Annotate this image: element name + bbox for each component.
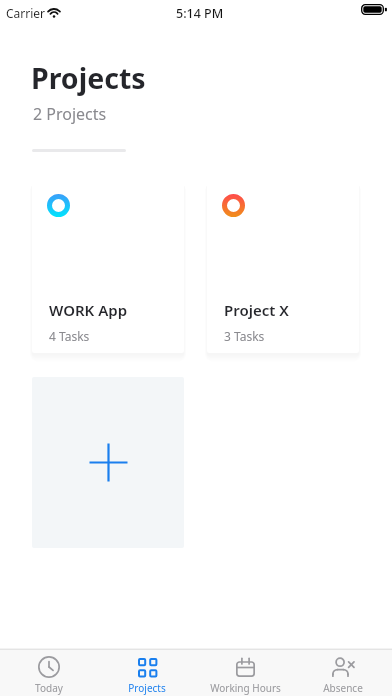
staticText: Absence xyxy=(323,681,363,695)
staticText: Today xyxy=(35,681,63,695)
button[interactable]: Add project xyxy=(32,377,184,548)
staticText: WORK App xyxy=(49,300,128,320)
button[interactable]: Projects xyxy=(98,650,196,696)
staticText: Project X xyxy=(224,300,289,320)
staticText: 3 Tasks xyxy=(224,328,265,344)
staticText: Projects xyxy=(128,681,166,695)
staticText: Carrier xyxy=(6,5,46,21)
button[interactable]: Working Hours xyxy=(196,650,294,696)
button[interactable]: Project X xyxy=(207,182,359,353)
staticText: 2 Projects xyxy=(33,103,107,125)
staticText: Projects xyxy=(31,59,146,98)
staticText: Working Hours xyxy=(210,681,281,695)
staticText: 4 Tasks xyxy=(49,328,90,344)
staticText: 5:14 PM xyxy=(176,5,224,22)
button[interactable]: Today xyxy=(0,650,98,696)
button[interactable]: WORK App xyxy=(32,182,184,353)
button[interactable]: Absence xyxy=(294,650,392,696)
